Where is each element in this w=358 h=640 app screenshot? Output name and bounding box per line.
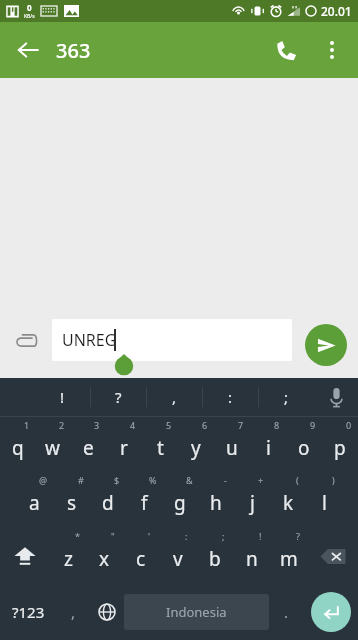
button[interactable]: ; [259, 378, 314, 416]
button[interactable]: Enter [303, 584, 358, 640]
staticText: - [224, 474, 227, 486]
staticText: ) [332, 474, 335, 486]
button[interactable]: w [35, 417, 70, 472]
button[interactable]: h [198, 472, 234, 528]
staticText: u [226, 435, 238, 461]
staticText: : [185, 530, 188, 542]
staticText: ? [296, 530, 300, 542]
button[interactable]: q [0, 417, 35, 472]
button[interactable]: Call [262, 26, 310, 74]
staticText: f [141, 490, 148, 516]
button[interactable]: k [270, 472, 306, 528]
staticText: x [99, 546, 110, 572]
staticText: q [12, 435, 24, 461]
staticText: 5 [166, 419, 172, 431]
staticText: " [111, 530, 115, 542]
staticText: v [173, 546, 183, 572]
staticText: 3 [94, 419, 100, 431]
staticText: k [283, 490, 294, 516]
staticText: ! [60, 387, 65, 407]
button[interactable]: z [50, 528, 86, 584]
staticText: 6 [202, 419, 208, 431]
staticText: t [157, 435, 164, 461]
button[interactable]: v [159, 528, 196, 584]
button[interactable]: ! [34, 378, 90, 416]
staticText: # [78, 474, 84, 486]
staticText: 4 [130, 419, 136, 431]
button[interactable]: m [270, 528, 307, 584]
staticText: l [322, 490, 327, 516]
button[interactable]: UNREG [52, 319, 292, 361]
staticText: a [29, 490, 40, 516]
staticText: & [186, 474, 193, 486]
staticText: $ [114, 474, 120, 486]
button[interactable]: s [53, 472, 90, 528]
staticText: o [298, 435, 310, 461]
staticText: d [102, 490, 114, 516]
button[interactable]: y [178, 417, 214, 472]
button[interactable]: p [322, 417, 358, 472]
button[interactable]: n [233, 528, 270, 584]
button[interactable]: ? [91, 378, 146, 416]
staticText: 20.01 [321, 3, 352, 19]
button[interactable]: Indonesia [124, 594, 269, 630]
staticText: e [83, 435, 94, 461]
button[interactable]: : [203, 378, 258, 416]
staticText: 363 [56, 37, 91, 64]
staticText: b [209, 546, 221, 572]
button[interactable]: d [90, 472, 126, 528]
button[interactable]: b [196, 528, 233, 584]
staticText: j [250, 490, 255, 516]
staticText: @ [39, 474, 48, 486]
staticText: Indonesia [166, 603, 227, 621]
staticText: : [228, 387, 233, 407]
button[interactable]: i [250, 417, 286, 472]
staticText: y [191, 435, 201, 461]
button[interactable]: r [106, 417, 142, 472]
staticText: 0 [27, 2, 32, 13]
staticText: ? [115, 387, 122, 407]
button[interactable]: o [286, 417, 322, 472]
staticText: 7 [238, 419, 244, 431]
button[interactable]: More options [310, 28, 354, 72]
staticText: 9 [310, 419, 316, 431]
staticText: UNREG [62, 329, 117, 351]
button[interactable]: a [16, 472, 53, 528]
button[interactable]: l [306, 472, 342, 528]
staticText: ' [148, 530, 151, 542]
button[interactable]: Back [0, 22, 56, 78]
button[interactable]: u [214, 417, 250, 472]
staticText: 8 [274, 419, 280, 431]
button[interactable]: Voice input [314, 378, 358, 416]
button[interactable]: f [126, 472, 162, 528]
button[interactable]: . [269, 584, 303, 640]
staticText: i [266, 435, 271, 461]
staticText: , [71, 602, 76, 622]
button[interactable]: t [142, 417, 178, 472]
staticText: p [334, 435, 346, 461]
button[interactable]: e [70, 417, 106, 472]
button[interactable]: x [86, 528, 122, 584]
staticText: r [120, 435, 128, 461]
button[interactable]: Attach [0, 319, 52, 363]
staticText: ! [259, 530, 262, 542]
staticText: s [67, 490, 77, 516]
button[interactable]: j [234, 472, 270, 528]
button[interactable]: g [162, 472, 198, 528]
staticText: % [149, 474, 157, 486]
staticText: ; [222, 530, 225, 542]
button[interactable]: Backspace [307, 528, 358, 584]
staticText: 1 [24, 419, 30, 431]
staticText: c [136, 546, 146, 572]
button[interactable]: , [56, 584, 90, 640]
button[interactable]: , [147, 378, 202, 416]
button[interactable]: Change language [90, 584, 124, 640]
button[interactable]: Shift [0, 528, 50, 584]
button[interactable]: c [122, 528, 159, 584]
button[interactable]: Send [300, 319, 352, 371]
staticText: z [64, 546, 73, 572]
staticText: n [246, 546, 258, 572]
staticText: , [172, 387, 177, 407]
button[interactable]: ?123 [0, 584, 56, 640]
staticText: 0 [346, 419, 352, 431]
